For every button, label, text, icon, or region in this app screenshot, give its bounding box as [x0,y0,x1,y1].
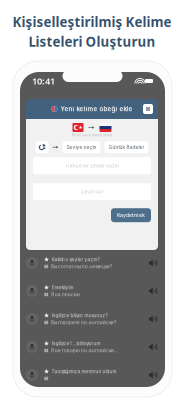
button[interactable]: Kapat [143,104,153,114]
staticText: Вы согласны по-немецки? [51,264,112,269]
button[interactable]: Günlük İfadeler [104,141,148,153]
staticText: Tanıştığımıza memnun oldum [51,369,116,374]
staticText: İngilizce biliyor musunuz? [51,313,107,318]
staticText: Yeni kelime öbeği ekle [60,105,132,113]
staticText: Я на пенсии [51,292,80,297]
button[interactable]: Seviye seçin [62,141,100,153]
staticText: Emekliyim [51,285,73,290]
staticText: Вы говорите по-английски? [51,320,116,325]
staticText: Listeleri Oluşturun [28,33,155,50]
button[interactable]: Kaydetmek [111,208,151,222]
staticText: Bir dil seçin (çeviri yönü) [72,133,112,137]
staticText: Я не говорю по-английски... [51,348,117,353]
staticText: Kaydetmek [117,212,145,218]
button[interactable]: Katıldı v şeyler yazın? [20,249,165,277]
button[interactable]: Dili değiştir [35,141,48,153]
staticText: Seviye seçin [66,144,96,150]
staticText: 10:41 [32,75,55,87]
staticText: Çeviri var [80,189,103,195]
staticText: Günlük İfadeler [108,144,144,150]
button[interactable]: Emekliyim [20,277,165,305]
button[interactable]: İngilizce biliyor musunuz? [20,305,165,333]
staticText: İngilizce'i ... bilmiyorum [51,341,100,346]
staticText: Kişiselleştirilmiş Kelime [12,13,171,31]
staticText: Türkçe bir şeyler yazın [65,163,119,169]
button[interactable]: Tanıştığımıza memnun oldum [20,361,165,389]
button[interactable]: İngilizce'i ... bilmiyorum [20,333,165,361]
staticText: Katıldı v şeyler yazın? [51,257,99,262]
